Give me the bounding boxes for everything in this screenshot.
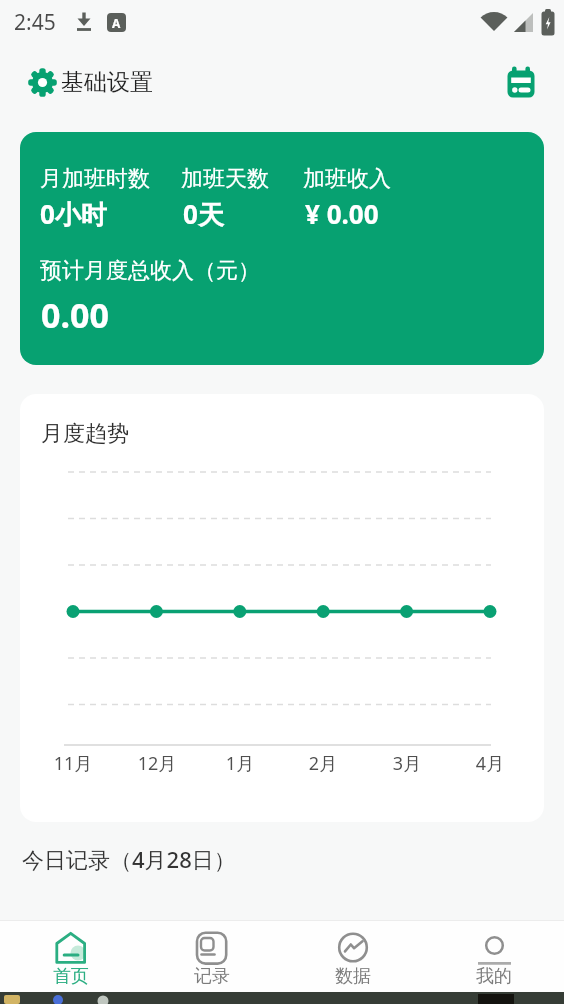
staticText: 2:45 bbox=[14, 8, 56, 37]
staticText: 0天 bbox=[183, 196, 224, 232]
staticText: 数据 bbox=[335, 965, 371, 988]
staticText: 4月 bbox=[450, 751, 530, 776]
staticText: 1月 bbox=[200, 751, 280, 776]
staticText: 11月 bbox=[33, 751, 113, 776]
staticText: 月度趋势 bbox=[41, 420, 129, 448]
button[interactable]: 数据 bbox=[282, 921, 423, 992]
button[interactable]: 基础设置 bbox=[27, 67, 153, 98]
staticText: 3月 bbox=[367, 751, 447, 776]
staticText: ¥ 0.00 bbox=[305, 196, 379, 231]
staticText: 2月 bbox=[283, 751, 363, 776]
staticText: 首页 bbox=[53, 965, 89, 988]
staticText: 今日记录（4月28日） bbox=[22, 844, 236, 874]
staticText: 0小时 bbox=[40, 196, 107, 232]
button[interactable] bbox=[505, 66, 537, 98]
button[interactable]: 首页 bbox=[0, 921, 141, 992]
staticText: 我的 bbox=[476, 965, 512, 988]
staticText: 加班收入 bbox=[303, 165, 391, 193]
button[interactable]: 我的 bbox=[423, 921, 564, 992]
staticText: 基础设置 bbox=[61, 68, 153, 97]
button[interactable]: 记录 bbox=[141, 921, 282, 992]
button[interactable]: 月加班时数 bbox=[20, 132, 544, 365]
staticText: 12月 bbox=[117, 751, 197, 776]
staticText: 加班天数 bbox=[181, 165, 269, 193]
staticText: A bbox=[112, 15, 121, 31]
staticText: 预计月度总收入（元） bbox=[40, 257, 260, 285]
staticText: 0.00 bbox=[41, 292, 109, 338]
staticText: 记录 bbox=[194, 965, 230, 988]
staticText: 月加班时数 bbox=[40, 165, 150, 193]
